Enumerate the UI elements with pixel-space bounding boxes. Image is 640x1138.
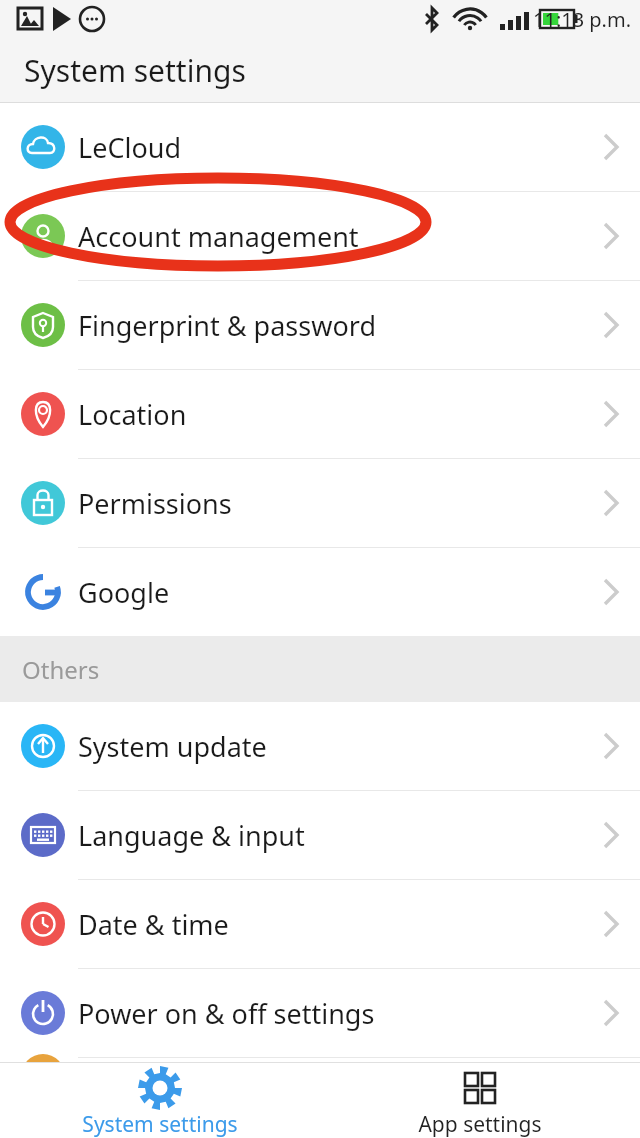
staticText: App settings	[418, 1110, 542, 1138]
button[interactable]: System update	[0, 702, 640, 790]
staticText: System settings	[24, 50, 246, 91]
button[interactable]: App settings	[320, 1063, 640, 1138]
button[interactable]: Google	[0, 548, 640, 636]
staticText: 11:13 p.m.	[533, 6, 632, 33]
button[interactable]: Date & time	[0, 880, 640, 968]
button[interactable]: Permissions	[0, 459, 640, 547]
staticText: LeCloud	[78, 129, 578, 166]
staticText: Location	[78, 396, 578, 433]
button[interactable]: System settings	[0, 1063, 320, 1138]
staticText: Date & time	[78, 906, 578, 943]
staticText: Power on & off settings	[78, 995, 578, 1032]
button[interactable]: Power on & off settings	[0, 969, 640, 1057]
button[interactable]: Account management	[0, 192, 640, 280]
staticText: Language & input	[78, 817, 578, 854]
button[interactable]: Language & input	[0, 791, 640, 879]
button[interactable]: Location	[0, 370, 640, 458]
staticText: Fingerprint & password	[78, 307, 578, 344]
button[interactable]: Fingerprint & password	[0, 281, 640, 369]
staticText: System settings	[82, 1110, 238, 1138]
staticText: Account management	[78, 218, 578, 255]
staticText: Google	[78, 574, 578, 611]
staticText: Permissions	[78, 485, 578, 522]
button[interactable]: LeCloud	[0, 103, 640, 191]
staticText: System update	[78, 728, 578, 765]
staticText: Others	[22, 653, 100, 686]
